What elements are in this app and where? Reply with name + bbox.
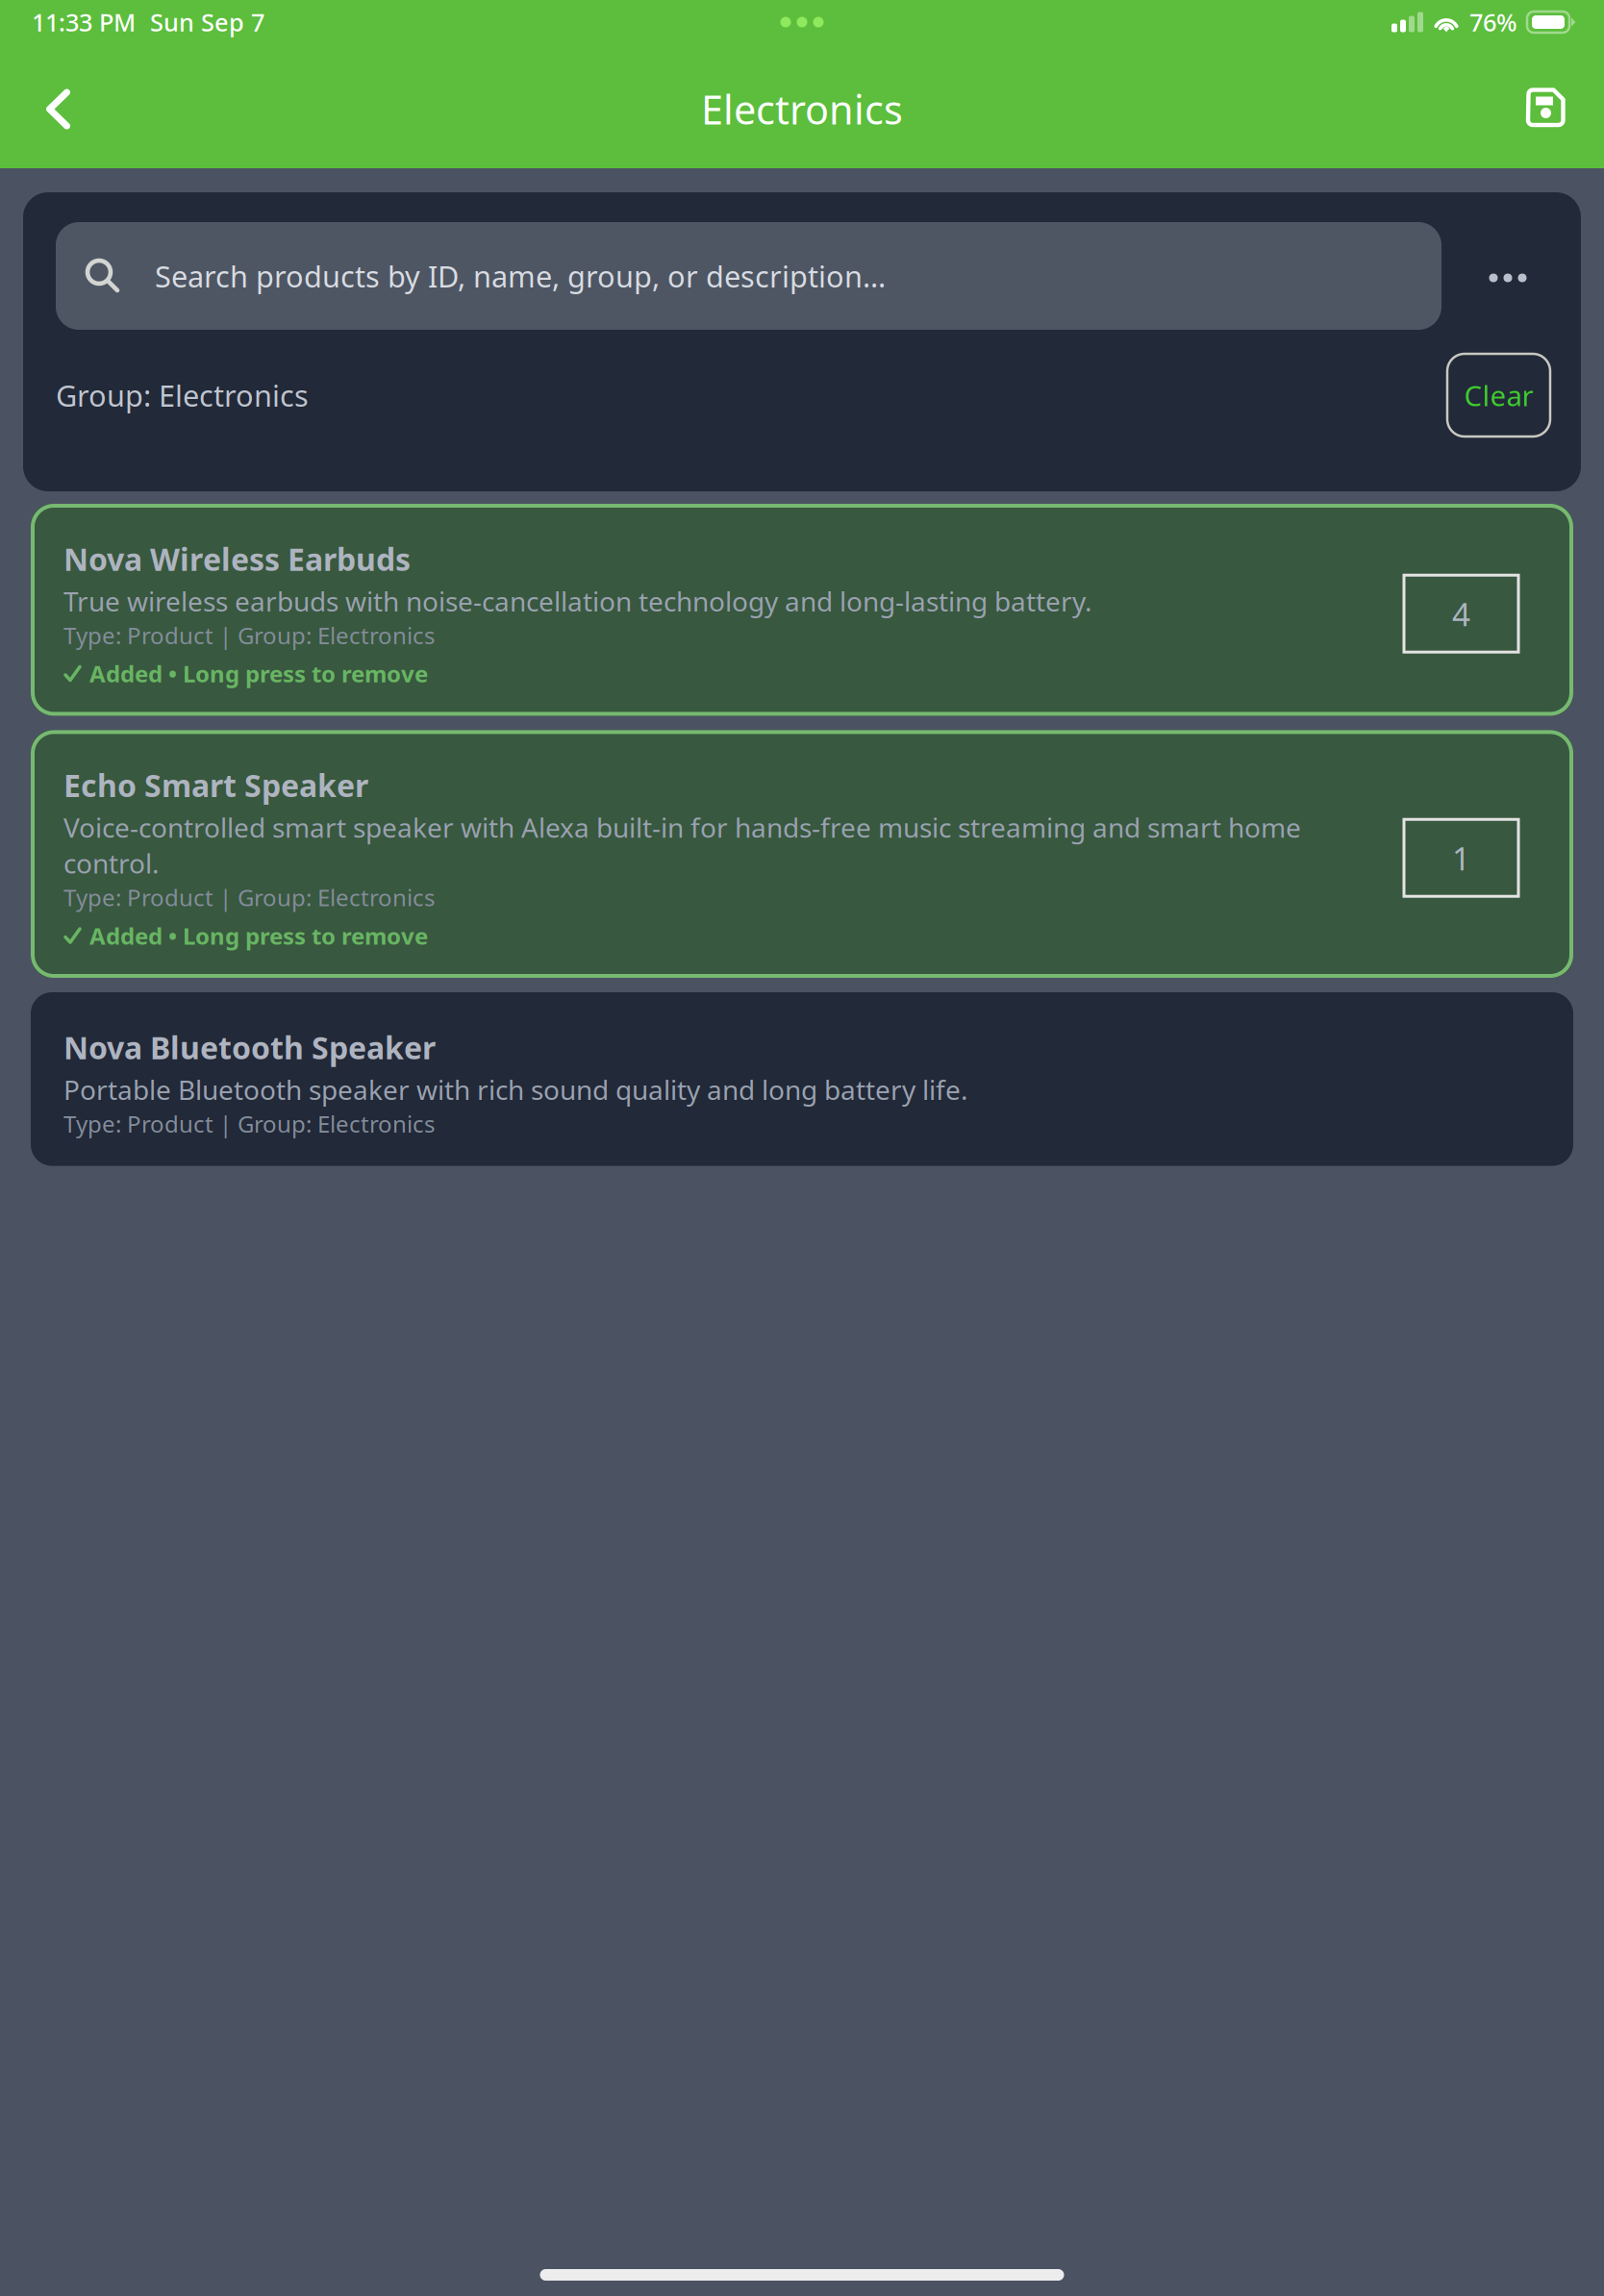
staticText: Type: Product | Group: Electronics <box>63 620 435 651</box>
button[interactable]: Nova Bluetooth Speaker <box>31 992 1573 1166</box>
staticText: 4 <box>1452 592 1470 635</box>
staticText: Electronics <box>701 83 903 136</box>
staticText: 11:33 PM <box>32 6 136 38</box>
staticText: Voice-controlled smart speaker with Alex… <box>63 809 1301 881</box>
staticText: Type: Product | Group: Electronics <box>63 882 435 913</box>
staticText: 76% <box>1469 6 1517 38</box>
staticText: Added • Long press to remove <box>89 920 428 951</box>
staticText: Nova Wireless Earbuds <box>63 538 411 579</box>
staticText: Portable Bluetooth speaker with rich sou… <box>63 1072 968 1107</box>
staticText: Search products by ID, name, group, or d… <box>155 256 886 295</box>
button[interactable]: Nova Wireless Earbuds <box>31 504 1573 716</box>
staticText: Echo Smart Speaker <box>63 765 368 806</box>
staticText: Type: Product | Group: Electronics <box>63 1108 435 1139</box>
button[interactable]: Clear <box>1447 354 1550 437</box>
staticText: 1 <box>1452 837 1470 879</box>
staticText: Sun Sep 7 <box>150 6 264 38</box>
staticText: Added • Long press to remove <box>89 658 428 689</box>
staticText: Group: Electronics <box>56 376 309 415</box>
button[interactable]: Save <box>1503 72 1604 146</box>
button[interactable]: Back <box>0 68 99 150</box>
staticText: Clear <box>1464 376 1533 414</box>
button[interactable]: Echo Smart Speaker <box>31 730 1573 978</box>
staticText: Nova Bluetooth Speaker <box>63 1027 436 1068</box>
staticText: True wireless earbuds with noise-cancell… <box>63 583 1092 619</box>
button[interactable]: More options <box>1441 222 1555 330</box>
